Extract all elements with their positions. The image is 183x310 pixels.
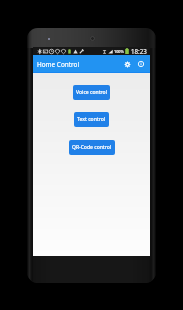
button[interactable]: Info: [134, 57, 148, 71]
button[interactable]: Settings: [120, 57, 134, 71]
button[interactable]: Voice control: [73, 85, 110, 100]
button[interactable]: QR-Code control: [69, 140, 115, 155]
staticText: QR-Code control: [72, 144, 112, 151]
staticText: 18:23: [131, 47, 147, 55]
staticText: 100%: [114, 49, 124, 54]
button[interactable]: Text control: [74, 112, 109, 127]
staticText: Voice control: [76, 89, 107, 96]
staticText: Text control: [77, 116, 106, 123]
staticText: Home Control: [37, 60, 80, 69]
